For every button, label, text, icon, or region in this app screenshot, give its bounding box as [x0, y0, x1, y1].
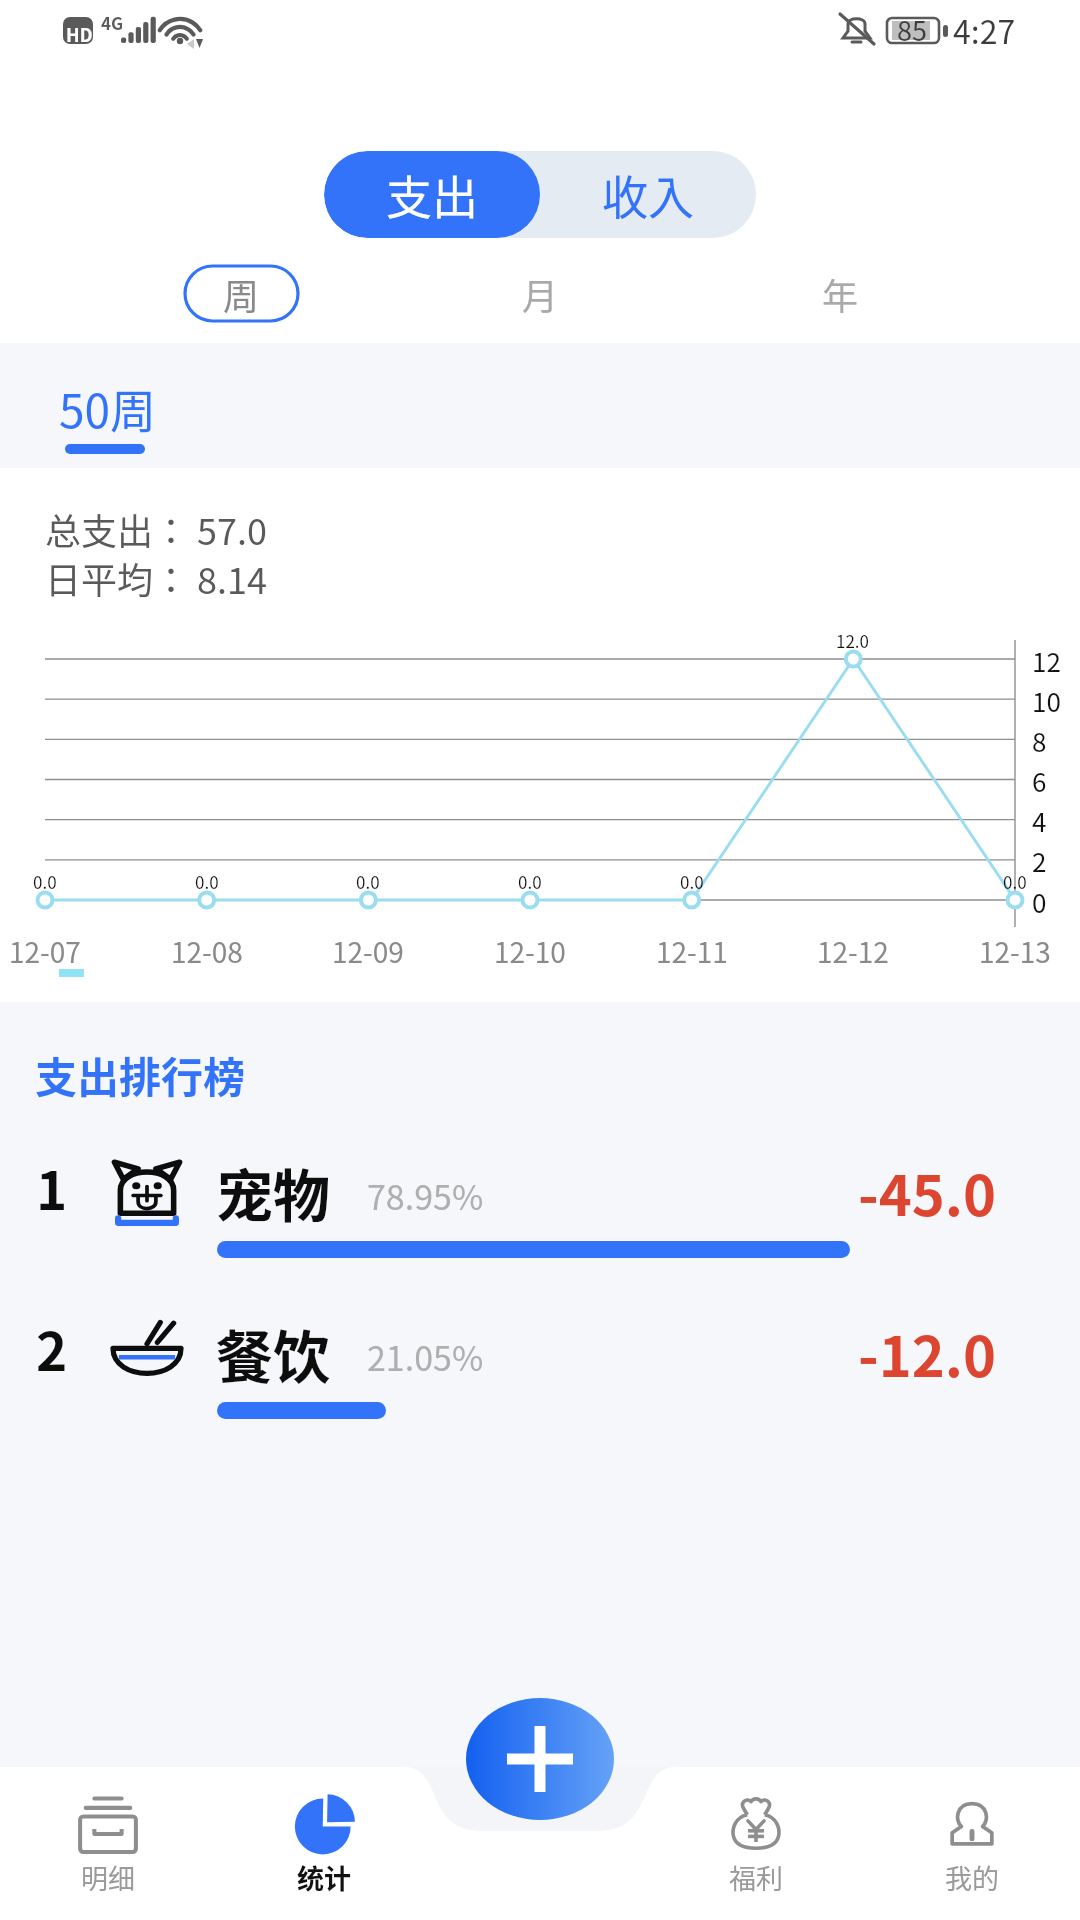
staticText: 0.0 — [356, 869, 380, 894]
staticText: 我的 — [945, 1858, 999, 1897]
staticText: 78.95% — [367, 1171, 484, 1220]
staticText: 12-09 — [332, 931, 404, 972]
staticText: 月 — [522, 268, 559, 320]
staticText: 年 — [822, 268, 859, 320]
button[interactable]: 添加 — [466, 1698, 614, 1820]
staticText: 12-08 — [171, 931, 243, 972]
button[interactable]: 支出 — [324, 151, 540, 238]
staticText: 餐饮 — [216, 1312, 330, 1395]
staticText: 4:27 — [953, 7, 1016, 53]
staticText: 12.0 — [836, 628, 870, 653]
staticText: 50周 — [59, 375, 157, 442]
staticText: 4 — [1032, 802, 1047, 840]
staticText: 0 — [1032, 883, 1047, 921]
staticText: 6 — [1032, 762, 1047, 800]
button[interactable]: 明细 — [0, 1767, 216, 1920]
staticText: 12-11 — [656, 931, 728, 972]
button[interactable]: 周 — [185, 266, 298, 321]
staticText: 10 — [1032, 682, 1061, 720]
staticText: 2 — [1032, 842, 1047, 880]
staticText: 0.0 — [518, 869, 542, 894]
staticText: 统计 — [297, 1858, 351, 1897]
staticText: -12.0 — [858, 1312, 997, 1393]
staticText: 12-12 — [817, 931, 889, 972]
staticText: 明细 — [81, 1858, 135, 1897]
staticText: 福利 — [729, 1858, 783, 1897]
staticText: 支出 — [386, 161, 478, 228]
staticText: 总支出： 57.0 — [45, 503, 268, 555]
staticText: 0.0 — [195, 869, 219, 894]
button[interactable]: 月 — [484, 266, 597, 321]
staticText: 12-10 — [494, 931, 566, 972]
staticText: -45.0 — [858, 1151, 997, 1232]
staticText: 21.05% — [367, 1332, 484, 1381]
button[interactable]: 收入 — [540, 151, 756, 238]
button[interactable]: 年 — [784, 266, 897, 321]
staticText: 0.0 — [33, 869, 57, 894]
staticText: 宠物 — [216, 1151, 330, 1234]
button[interactable]: 2 — [0, 1319, 1080, 1444]
staticText: 收入 — [602, 161, 694, 228]
staticText: 0.0 — [1003, 869, 1027, 894]
staticText: HD — [66, 21, 93, 47]
staticText: 4G — [101, 10, 124, 35]
button[interactable]: 福利 — [648, 1767, 864, 1920]
staticText: 12-07 — [9, 931, 81, 972]
button[interactable]: 我的 — [864, 1767, 1080, 1920]
staticText: 1 — [36, 1149, 68, 1226]
button[interactable]: 统计 — [216, 1767, 432, 1920]
button[interactable]: 支出排行榜 — [35, 1044, 246, 1105]
staticText: 日平均： 8.14 — [45, 552, 268, 604]
staticText: 2 — [36, 1310, 68, 1387]
staticText: 8 — [1032, 722, 1047, 760]
button[interactable]: 1 — [0, 1158, 1080, 1283]
staticText: 周 — [223, 268, 260, 320]
staticText: 0.0 — [680, 869, 704, 894]
button[interactable]: 50周 — [59, 375, 157, 454]
staticText: 12 — [1032, 642, 1061, 680]
staticText: 12-13 — [979, 931, 1051, 972]
staticText: 85 — [897, 10, 927, 49]
